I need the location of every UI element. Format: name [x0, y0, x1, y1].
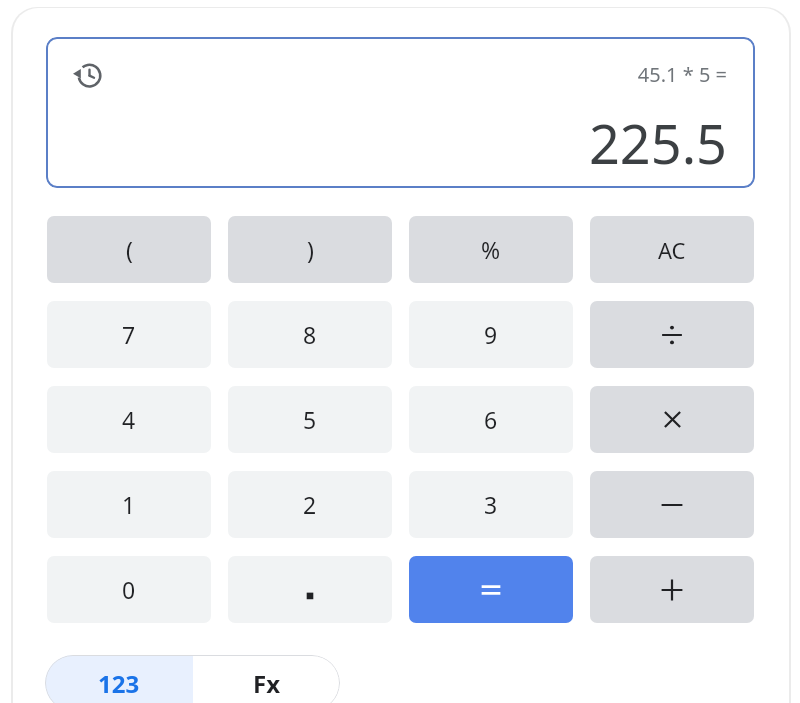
staticText: 123 [98, 667, 140, 700]
staticText: ) [307, 234, 314, 265]
button[interactable]: Multiply [590, 386, 754, 453]
staticText: AC [658, 235, 686, 265]
button[interactable]: 7 [47, 301, 211, 368]
button[interactable]: Decimal point [228, 556, 392, 623]
staticText: 6 [484, 404, 498, 435]
button[interactable]: Minus [590, 471, 754, 538]
button[interactable]: % [409, 216, 573, 283]
button[interactable]: 6 [409, 386, 573, 453]
button[interactable]: Divide [590, 301, 754, 368]
staticText: 1 [122, 489, 136, 520]
staticText: 2 [303, 489, 317, 520]
button[interactable]: History [46, 37, 755, 188]
staticText: 7 [122, 319, 136, 350]
staticText: 45.1 * 5 = [46, 61, 727, 88]
button[interactable]: 4 [47, 386, 211, 453]
staticText: 0 [122, 574, 136, 605]
button[interactable]: 9 [409, 301, 573, 368]
staticText: 3 [484, 489, 498, 520]
button[interactable]: 3 [409, 471, 573, 538]
button[interactable]: 5 [228, 386, 392, 453]
button[interactable]: 1 [47, 471, 211, 538]
button[interactable]: Fx [193, 655, 340, 703]
button[interactable]: ) [228, 216, 392, 283]
staticText: % [481, 234, 501, 265]
button[interactable]: 0 [47, 556, 211, 623]
button[interactable]: Equals [409, 556, 573, 623]
staticText: 225.5 [46, 106, 727, 180]
staticText: Fx [253, 667, 281, 700]
staticText: 4 [122, 404, 136, 435]
staticText: ( [126, 234, 133, 265]
button[interactable]: Plus [590, 556, 754, 623]
staticText: 9 [484, 319, 498, 350]
button[interactable]: 2 [228, 471, 392, 538]
button[interactable]: ( [47, 216, 211, 283]
staticText: 5 [303, 404, 317, 435]
button[interactable]: AC [590, 216, 754, 283]
button[interactable]: 123 [45, 655, 193, 703]
staticText: 8 [303, 319, 317, 350]
button[interactable]: History [69, 56, 107, 94]
button[interactable]: 8 [228, 301, 392, 368]
